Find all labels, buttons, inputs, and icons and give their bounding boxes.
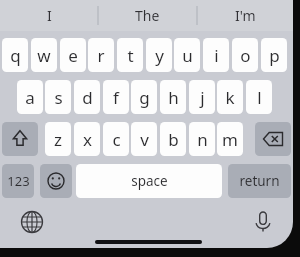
button[interactable]: c xyxy=(103,122,129,156)
button[interactable]: space xyxy=(76,164,222,198)
staticText: a xyxy=(25,86,35,109)
staticText: The xyxy=(135,6,160,25)
staticText: w xyxy=(37,44,51,67)
button[interactable]: x xyxy=(74,122,100,156)
button[interactable]: u xyxy=(174,38,200,72)
staticText: r xyxy=(97,44,105,67)
button[interactable]: v xyxy=(131,122,157,156)
button[interactable]: Shift xyxy=(2,122,38,156)
staticText: j xyxy=(200,86,205,109)
staticText: 123 xyxy=(7,172,30,190)
staticText: z xyxy=(54,128,62,151)
button[interactable]: Emoji xyxy=(40,164,72,198)
staticText: g xyxy=(139,86,150,109)
staticText: I xyxy=(47,6,52,25)
staticText: b xyxy=(168,128,179,151)
button[interactable]: e xyxy=(60,38,86,72)
button[interactable]: Backspace xyxy=(255,122,291,156)
button[interactable]: n xyxy=(189,122,215,156)
button[interactable]: y xyxy=(146,38,172,72)
staticText: p xyxy=(269,44,280,67)
button[interactable]: q xyxy=(2,38,28,72)
button[interactable]: w xyxy=(31,38,57,72)
button[interactable]: f xyxy=(103,80,129,114)
button[interactable]: t xyxy=(117,38,143,72)
button[interactable]: Change keyboard language xyxy=(16,206,48,238)
button[interactable]: m xyxy=(217,122,243,156)
button[interactable]: j xyxy=(189,80,215,114)
staticText: u xyxy=(182,44,193,67)
staticText: o xyxy=(240,44,251,67)
button[interactable]: Dictation xyxy=(247,206,279,238)
button[interactable]: g xyxy=(131,80,157,114)
staticText: space xyxy=(131,172,168,190)
button[interactable]: d xyxy=(74,80,100,114)
staticText: l xyxy=(257,86,262,109)
button[interactable]: I'm xyxy=(201,2,289,29)
staticText: m xyxy=(222,128,238,151)
staticText: q xyxy=(10,44,21,67)
staticText: y xyxy=(155,44,164,67)
button[interactable]: k xyxy=(217,80,243,114)
button[interactable]: s xyxy=(45,80,71,114)
staticText: s xyxy=(54,86,63,109)
button[interactable]: h xyxy=(160,80,186,114)
button[interactable]: The xyxy=(103,2,191,29)
staticText: d xyxy=(82,86,93,109)
staticText: t xyxy=(127,44,134,67)
button[interactable]: r xyxy=(88,38,114,72)
button[interactable]: a xyxy=(17,80,43,114)
button[interactable]: return xyxy=(228,164,291,198)
button[interactable]: 123 xyxy=(2,164,34,198)
button[interactable]: l xyxy=(246,80,272,114)
staticText: e xyxy=(68,44,78,67)
button[interactable]: o xyxy=(232,38,258,72)
button[interactable]: i xyxy=(203,38,229,72)
staticText: i xyxy=(214,44,219,67)
staticText: v xyxy=(140,128,149,151)
button[interactable]: z xyxy=(45,122,71,156)
staticText: n xyxy=(197,128,208,151)
staticText: I'm xyxy=(235,6,256,25)
staticText: f xyxy=(113,86,119,109)
button[interactable]: I xyxy=(5,2,93,29)
staticText: x xyxy=(83,128,92,151)
button[interactable]: p xyxy=(261,38,287,72)
staticText: return xyxy=(239,172,280,190)
staticText: h xyxy=(168,86,179,109)
staticText: c xyxy=(112,128,121,151)
staticText: k xyxy=(225,86,235,109)
button[interactable]: b xyxy=(160,122,186,156)
